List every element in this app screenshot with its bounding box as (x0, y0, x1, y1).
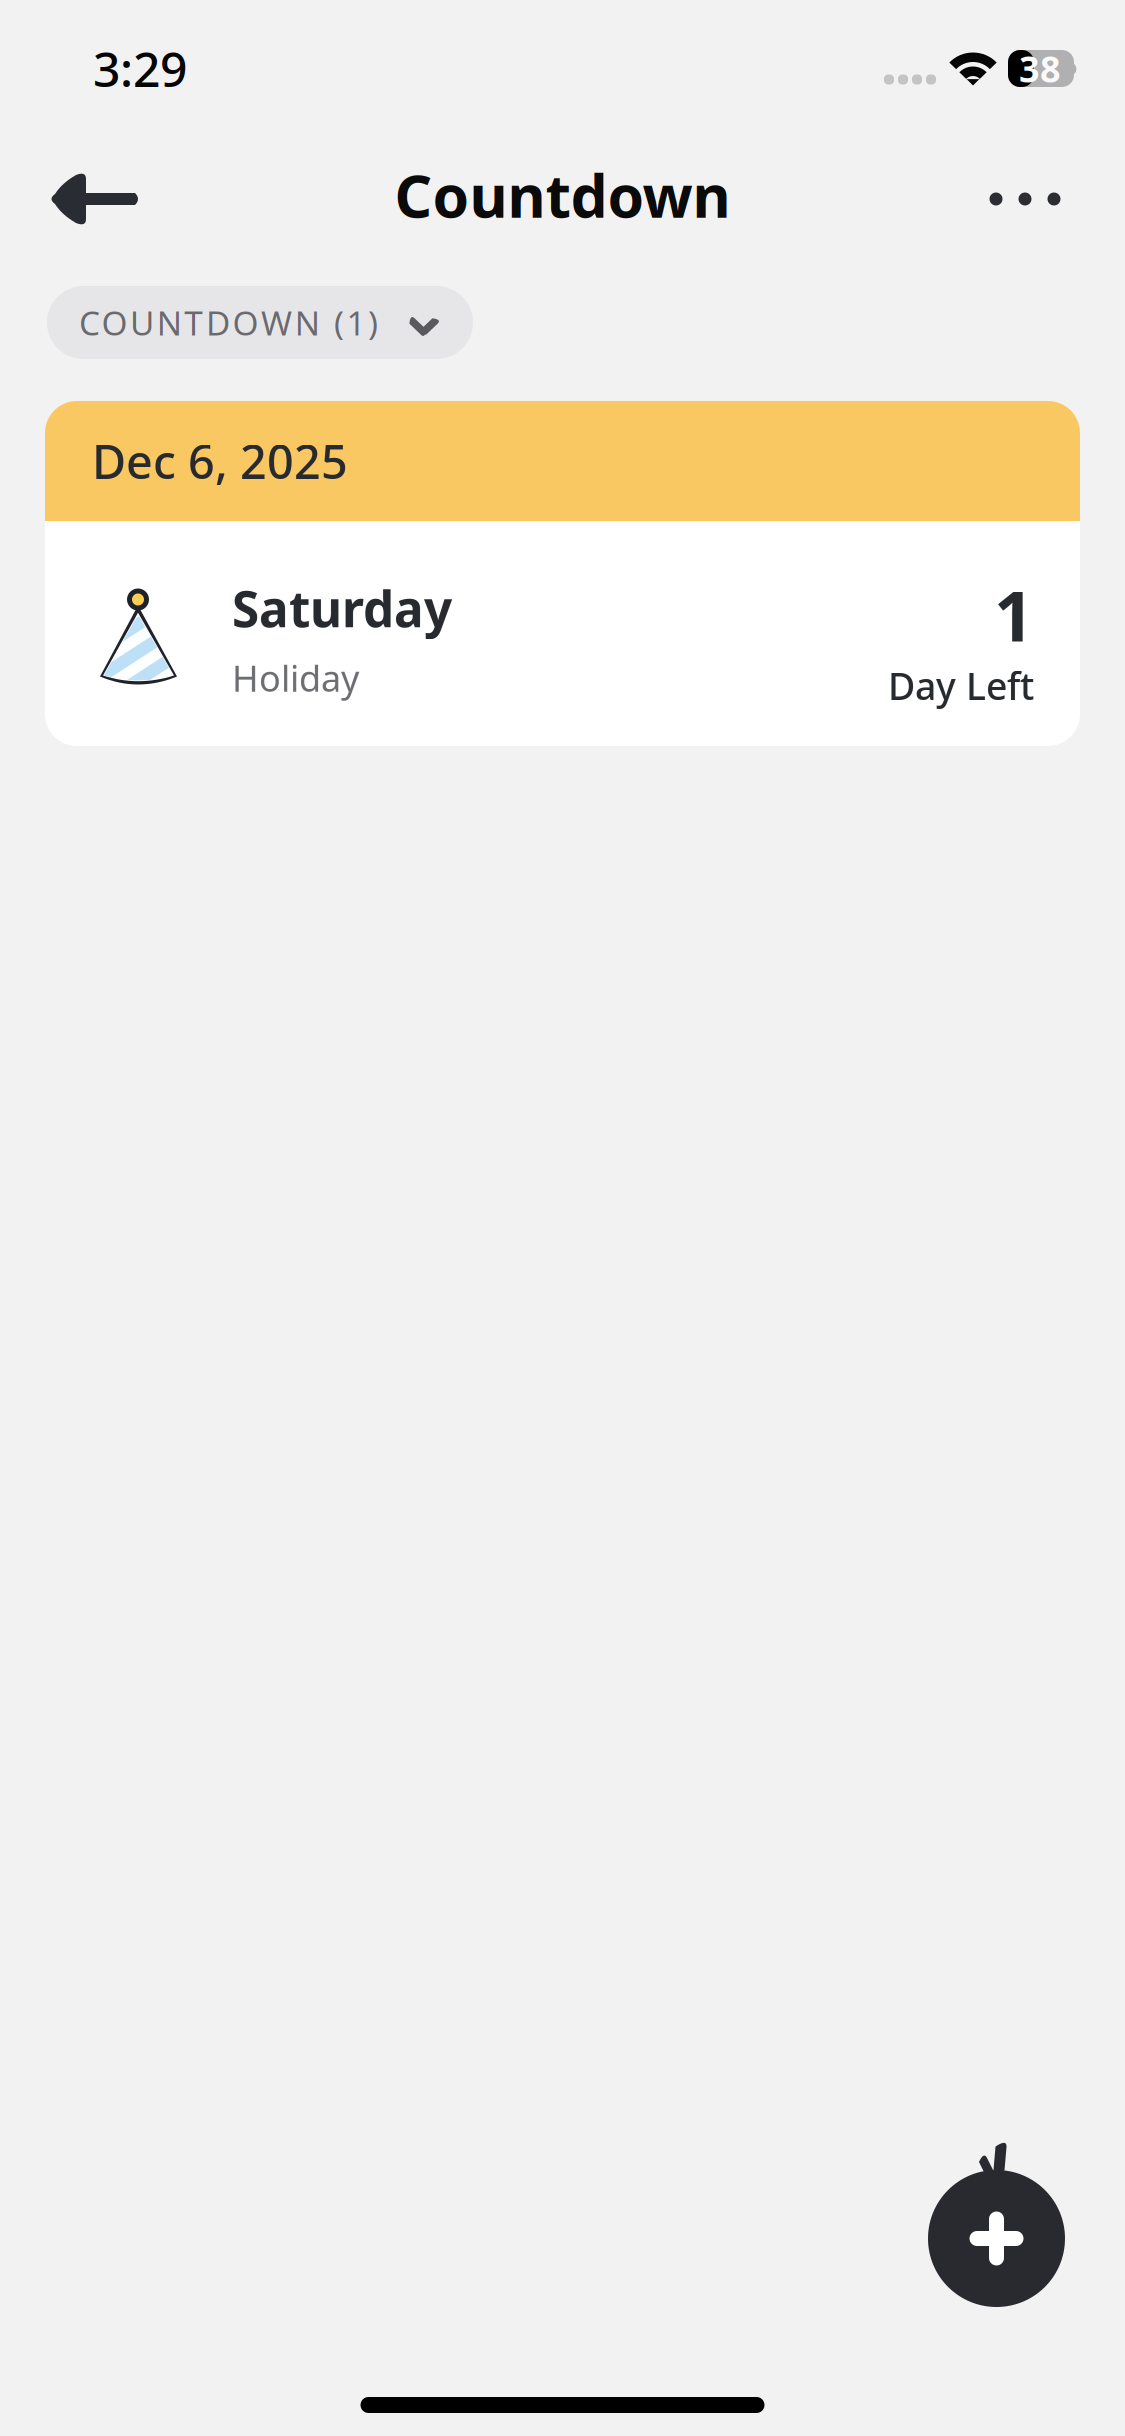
staticText: Saturday (232, 575, 452, 641)
staticText: Countdown (394, 156, 730, 234)
button[interactable]: COUNTDOWN (1) (47, 286, 473, 359)
staticText: Holiday (232, 654, 359, 702)
button[interactable]: Add countdown (928, 2136, 1065, 2307)
staticText: 1 (994, 569, 1034, 661)
button[interactable]: Dec 6, 2025 (45, 401, 1080, 746)
button[interactable]: Back (26, 139, 168, 259)
staticText: 3:29 (93, 37, 187, 100)
staticText: COUNTDOWN (1) (79, 300, 378, 345)
button[interactable]: More options (954, 139, 1096, 259)
staticText: 38 (1019, 45, 1061, 92)
staticText: Dec 6, 2025 (92, 430, 348, 492)
staticText: Day Left (888, 661, 1034, 710)
